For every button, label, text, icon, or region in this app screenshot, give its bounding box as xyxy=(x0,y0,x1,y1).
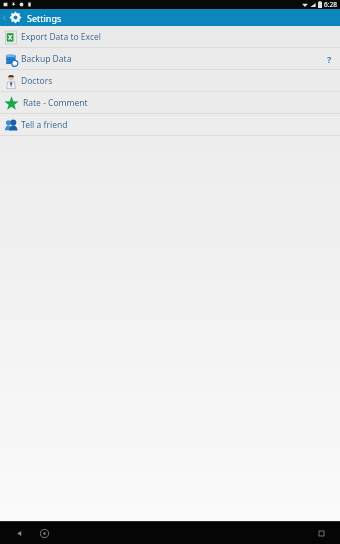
staticText: Doctors xyxy=(21,75,53,87)
staticText: Export Data to Excel xyxy=(21,31,101,43)
button[interactable]: Doctors xyxy=(0,70,340,92)
staticText: Tell a friend xyxy=(21,119,68,131)
staticText: Rate - Comment xyxy=(23,97,88,109)
staticText: Settings xyxy=(27,12,62,24)
staticText: Backup Data xyxy=(21,53,72,65)
staticText: 6:28 xyxy=(324,0,337,9)
button[interactable]: Export Data to Excel xyxy=(0,26,340,48)
staticText: ? xyxy=(327,53,332,65)
button[interactable]: Rate - Comment xyxy=(0,92,340,114)
other: Back xyxy=(2,15,8,21)
button[interactable]: Back xyxy=(12,526,26,540)
button[interactable]: Backup Data xyxy=(0,48,340,70)
button[interactable]: Recents xyxy=(314,526,328,540)
button[interactable]: Home xyxy=(36,525,52,541)
button[interactable]: Tell a friend xyxy=(0,114,340,136)
